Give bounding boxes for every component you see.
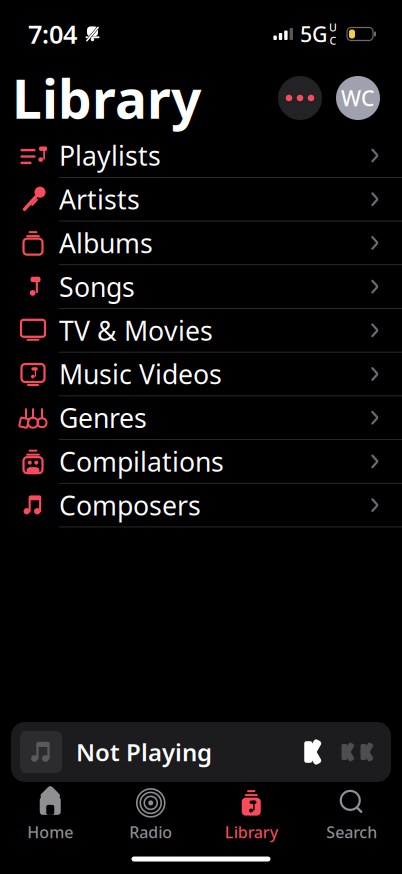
button[interactable]: More options <box>278 76 322 120</box>
staticText: Library <box>225 821 278 843</box>
button[interactable]: Genres <box>0 396 402 440</box>
button[interactable]: Artists <box>0 178 402 221</box>
staticText: Radio <box>129 821 172 843</box>
button[interactable]: Playlists <box>0 134 402 178</box>
staticText: 7:04 <box>28 17 77 51</box>
staticText: Home <box>27 821 73 843</box>
button[interactable]: Home <box>0 788 100 844</box>
staticText: C <box>329 33 336 48</box>
button[interactable]: Library <box>201 788 301 844</box>
staticText: U <box>329 20 337 34</box>
button[interactable]: Search <box>301 788 402 844</box>
button[interactable]: Play <box>289 730 333 774</box>
staticText: Compilations <box>59 444 224 479</box>
staticText: Search <box>326 821 377 843</box>
staticText: Library <box>12 63 201 133</box>
staticText: WC <box>341 84 375 112</box>
button[interactable]: Account <box>336 76 380 120</box>
button[interactable]: Composers <box>0 484 402 527</box>
staticText: Composers <box>59 487 201 523</box>
button[interactable]: Compilations <box>0 440 402 484</box>
staticText: Genres <box>59 400 147 435</box>
staticText: Not Playing <box>76 736 212 768</box>
staticText: Music Videos <box>59 356 222 392</box>
staticText: Songs <box>59 269 135 304</box>
staticText: Playlists <box>59 138 161 173</box>
staticText: TV & Movies <box>59 313 213 348</box>
staticText: 5G <box>300 20 328 48</box>
button[interactable]: Albums <box>0 221 402 265</box>
staticText: Artists <box>59 181 140 217</box>
button[interactable]: Next <box>333 730 379 774</box>
button[interactable]: Songs <box>0 265 402 309</box>
button[interactable]: Radio <box>100 788 201 844</box>
staticText: Albums <box>59 225 153 261</box>
button[interactable]: TV & Movies <box>0 309 402 352</box>
button[interactable]: Music Videos <box>0 352 402 396</box>
